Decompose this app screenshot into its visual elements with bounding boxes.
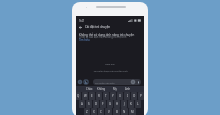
button[interactable]: I	[124, 92, 130, 100]
button[interactable]: K	[128, 100, 134, 108]
button[interactable]: J	[121, 100, 127, 108]
staticText: Cài đặt trò chuyện	[85, 25, 111, 29]
staticText: M	[131, 110, 134, 114]
button[interactable]: Không	[95, 86, 108, 92]
staticText: Tin nhắn văn bản	[95, 81, 115, 84]
button[interactable]: Q	[76, 92, 81, 100]
button[interactable]: Anh	[121, 86, 134, 92]
button[interactable]: W	[82, 92, 88, 100]
button[interactable]: Back	[77, 24, 83, 30]
staticText: D	[95, 102, 98, 106]
button[interactable]: A	[79, 100, 85, 108]
button[interactable]: M	[129, 108, 136, 115]
staticText: Chào	[86, 87, 93, 91]
staticText: S	[88, 102, 90, 106]
staticText: P	[140, 94, 142, 98]
staticText: Thiết bị của bạn hiện không hỗ trợ tính	[79, 35, 127, 39]
staticText: Không thể sử dụng tính năng trò chuyện	[79, 33, 135, 37]
button[interactable]: B	[113, 108, 120, 115]
staticText: Tìm hiểu	[79, 38, 90, 42]
staticText: A	[81, 102, 83, 106]
staticText: U	[119, 94, 122, 98]
button[interactable]: T	[103, 92, 109, 100]
button[interactable]: Camera	[77, 79, 83, 85]
staticText: H	[116, 102, 119, 106]
button[interactable]: C	[98, 108, 104, 115]
staticText: R	[98, 94, 100, 98]
staticText: X	[93, 110, 95, 114]
button[interactable]: Y	[110, 92, 116, 100]
button[interactable]: F	[100, 100, 106, 108]
button[interactable]: X	[91, 108, 97, 115]
button[interactable]: My	[108, 86, 121, 92]
staticText: T	[105, 94, 107, 98]
staticText: B	[116, 110, 118, 114]
staticText: E	[91, 94, 93, 98]
staticText: V	[108, 110, 110, 114]
staticText: Hôm nay	[105, 63, 115, 66]
button[interactable]: Z	[84, 108, 90, 115]
staticText: My	[113, 87, 117, 91]
staticText: Không	[97, 87, 106, 91]
button[interactable]: D	[93, 100, 99, 108]
staticText: O	[133, 94, 136, 98]
staticText: Y	[112, 94, 114, 98]
button[interactable]: N	[121, 108, 128, 115]
button[interactable]: O	[131, 92, 137, 100]
staticText: Tin nhắn được mã hóa đầu cuối	[93, 70, 128, 73]
staticText: N	[123, 110, 126, 114]
staticText: I	[127, 94, 128, 98]
staticText: G	[109, 102, 112, 106]
button[interactable]: G	[107, 100, 113, 108]
button[interactable]: R	[96, 92, 102, 100]
button[interactable]: E	[89, 92, 95, 100]
staticText: K	[130, 102, 132, 106]
staticText: L	[137, 102, 139, 106]
button[interactable]: Tin nhắn văn bản	[93, 79, 141, 85]
button[interactable]: P	[138, 92, 144, 100]
staticText: J	[124, 102, 125, 106]
button[interactable]: Chào	[83, 86, 95, 92]
staticText: W	[84, 94, 87, 98]
button[interactable]: U	[117, 92, 123, 100]
staticText: 9:41	[79, 19, 85, 23]
button[interactable]: Gallery	[83, 79, 89, 85]
staticText: C	[100, 110, 102, 114]
staticText: F	[102, 102, 104, 106]
staticText: Q	[77, 94, 80, 98]
button[interactable]: V	[105, 108, 112, 115]
staticText: Z	[86, 110, 88, 114]
staticText: Anh	[125, 87, 131, 91]
button[interactable]: H	[114, 100, 120, 108]
button[interactable]: L	[135, 100, 141, 108]
button[interactable]: S	[86, 100, 92, 108]
